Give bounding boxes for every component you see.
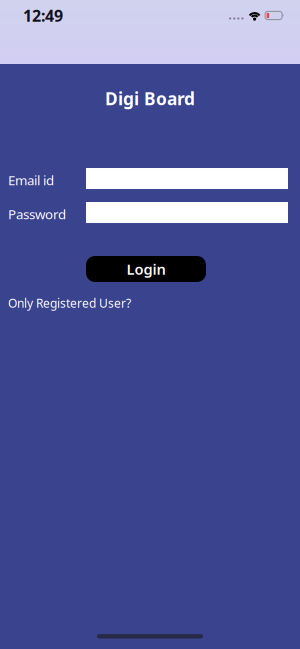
button[interactable]: Login bbox=[86, 256, 206, 282]
staticText: 12:49 bbox=[23, 5, 63, 26]
staticText: Only Registered User? bbox=[8, 295, 131, 311]
staticText: Password bbox=[8, 205, 66, 223]
staticText: Email id bbox=[8, 171, 54, 189]
staticText: Digi Board bbox=[105, 87, 195, 110]
staticText: Login bbox=[126, 259, 165, 279]
